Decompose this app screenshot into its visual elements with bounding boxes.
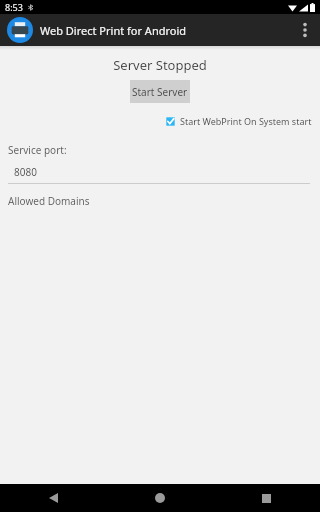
button[interactable]: Allowed Domains [8,194,90,208]
staticText: Start Server [132,85,188,99]
button[interactable]: More options [290,14,320,46]
staticText: Start WebPrint On System start [180,115,312,127]
staticText: Server Stopped [0,56,320,74]
button[interactable]: Recent apps [213,484,320,512]
button[interactable]: Start Server [130,80,190,103]
staticText: Web Direct Print for Android [40,23,187,38]
staticText: Service port: [8,143,67,157]
button[interactable]: 8080 [8,165,310,184]
button[interactable]: Home [106,484,213,512]
staticText: 8:53 [5,1,23,13]
staticText: 8080 [14,165,37,179]
button[interactable]: Start WebPrint On System start [165,115,312,127]
button[interactable]: Back [0,484,106,512]
